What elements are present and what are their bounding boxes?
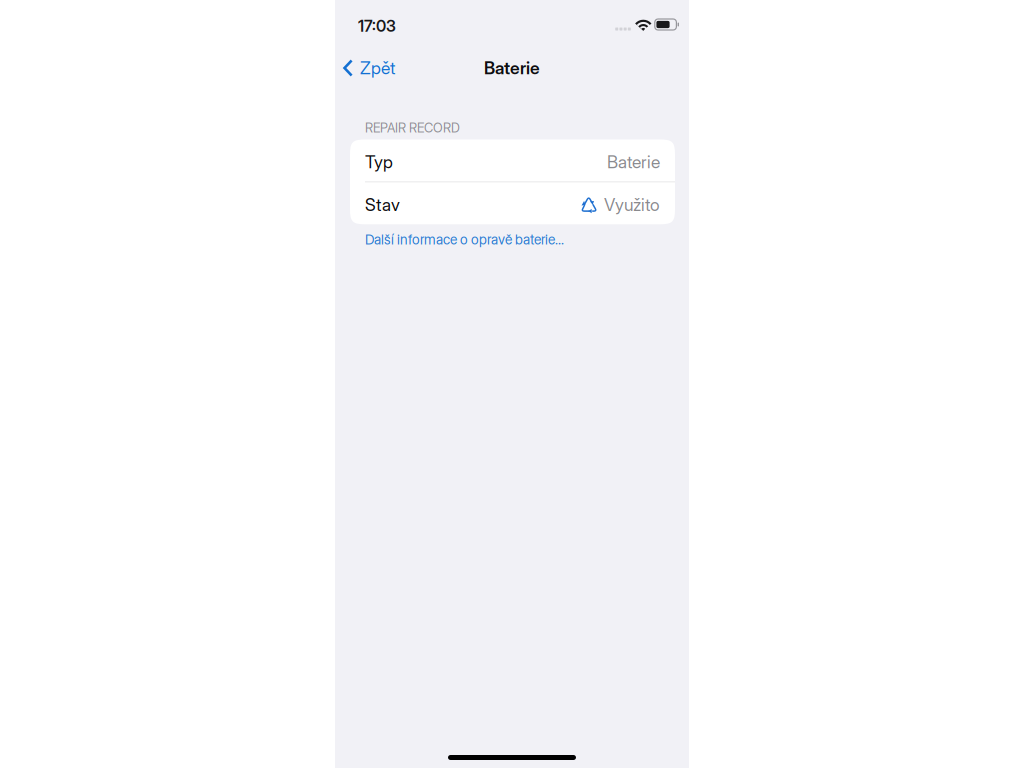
button[interactable]: Typ (350, 139, 675, 181)
staticText: Baterie (607, 151, 660, 172)
button[interactable]: Stav (350, 182, 675, 224)
staticText: Baterie (484, 57, 540, 78)
staticText: Zpět (360, 57, 395, 78)
button[interactable]: Zpět (335, 50, 403, 85)
staticText: Využito (604, 194, 660, 215)
staticText: 17:03 (358, 16, 396, 36)
staticText: Stav (365, 194, 400, 215)
staticText: Typ (365, 151, 393, 172)
staticText: Další informace o opravě baterie... (365, 231, 564, 248)
button[interactable]: Další informace o opravě baterie... (335, 224, 689, 253)
staticText: REPAIR RECORD (365, 120, 460, 135)
